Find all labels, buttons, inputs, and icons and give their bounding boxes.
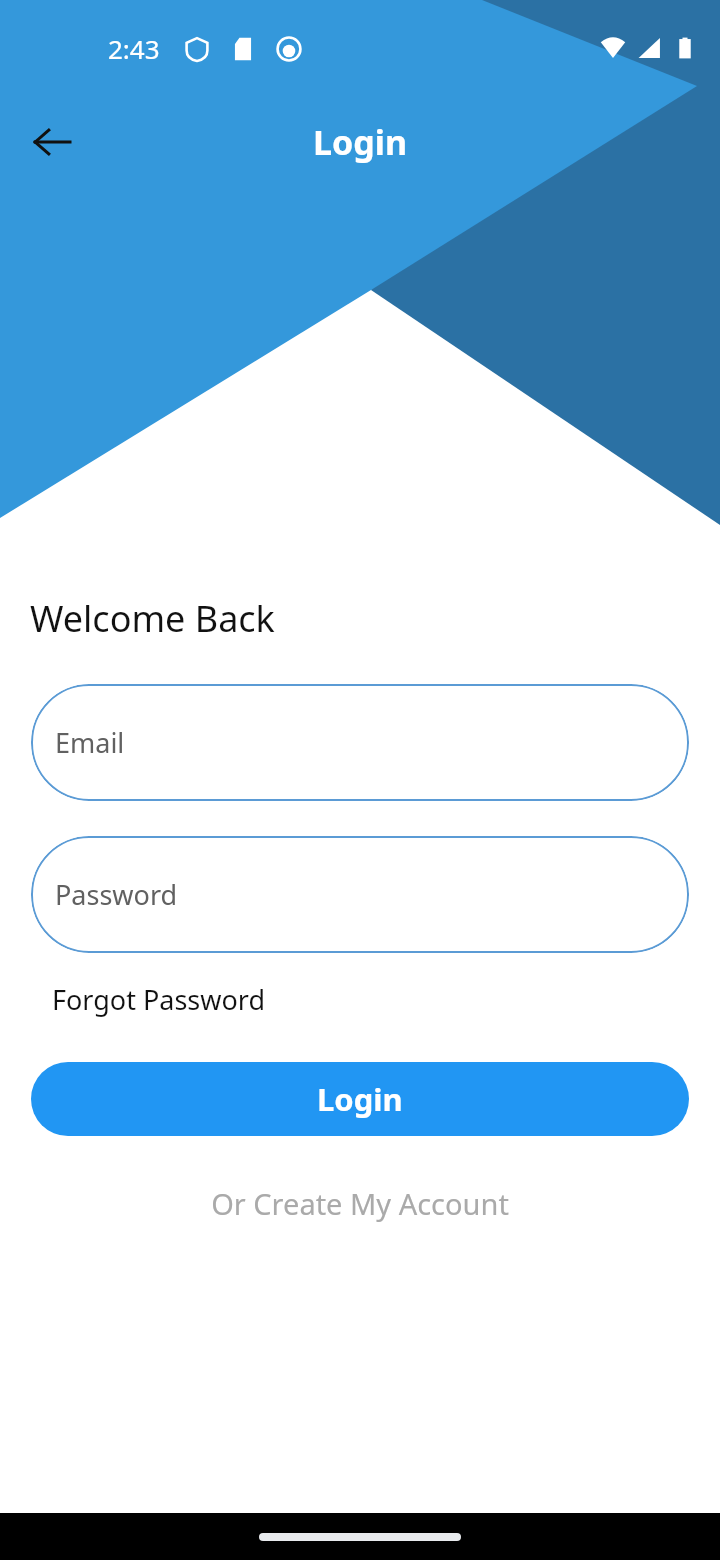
staticText: Login xyxy=(313,119,408,165)
button[interactable]: Or Create My Account xyxy=(0,1184,720,1223)
staticText: Welcome Back xyxy=(30,594,275,643)
button[interactable]: Email xyxy=(31,684,689,801)
staticText: Password xyxy=(55,876,178,913)
staticText: Email xyxy=(55,724,125,761)
staticText: Forgot Password xyxy=(52,981,266,1018)
button[interactable]: Password xyxy=(31,836,689,953)
button[interactable]: Login xyxy=(31,1062,689,1136)
button[interactable]: Back xyxy=(18,108,86,176)
staticText: 2:43 xyxy=(108,31,160,66)
staticText: Or Create My Account xyxy=(211,1184,509,1223)
staticText: Login xyxy=(317,1078,403,1120)
button[interactable]: Forgot Password xyxy=(52,981,266,1018)
